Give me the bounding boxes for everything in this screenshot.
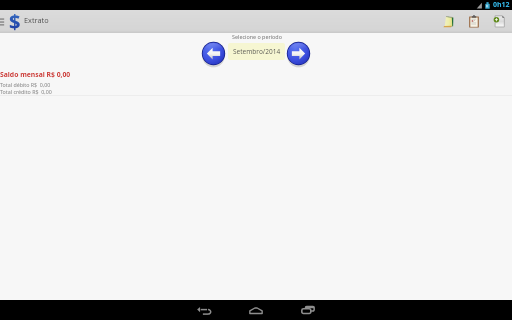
button[interactable]: Open navigation drawer — [0, 10, 8, 33]
staticText: $ — [9, 8, 21, 31]
staticText: Total débito R$ 0,00 — [0, 81, 51, 88]
button[interactable]: Recent apps — [290, 300, 326, 320]
staticText: Extrato — [24, 15, 49, 25]
button[interactable]: Reports — [464, 10, 484, 33]
staticText: Total crédito R$ 0,00 — [0, 88, 52, 95]
button[interactable]: Next period — [285, 40, 312, 67]
staticText: Selecione o período — [232, 33, 282, 40]
button[interactable]: App logo — [8, 10, 23, 33]
button[interactable]: New entry — [489, 10, 509, 33]
button[interactable]: Previous period — [200, 40, 227, 67]
button[interactable]: Folders — [438, 10, 458, 33]
staticText: Setembro/2014 — [233, 47, 281, 56]
staticText: Saldo mensal R$ 0,00 — [0, 70, 71, 79]
staticText: 0h12 — [493, 0, 510, 10]
button[interactable]: Setembro/2014 — [228, 43, 285, 60]
button[interactable]: Back — [186, 300, 222, 320]
button[interactable]: Home — [238, 300, 274, 320]
